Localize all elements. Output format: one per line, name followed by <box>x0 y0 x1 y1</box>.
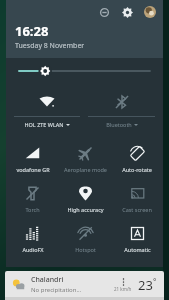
button[interactable]: vodafone GR <box>6 139 59 179</box>
button[interactable]: Bluetooth <box>88 90 155 131</box>
button[interactable]: Torch <box>6 179 59 219</box>
staticText: High accuracy <box>67 206 104 213</box>
staticText: Bluetooth <box>106 121 132 128</box>
staticText: Hotspot <box>75 246 96 253</box>
button[interactable]: Do not disturb <box>96 4 112 20</box>
staticText: 23 <box>138 276 153 294</box>
button[interactable]: Auto-rotate <box>111 139 163 179</box>
button[interactable]: Settings <box>119 4 135 20</box>
button[interactable]: Aeroplane mode <box>59 139 111 179</box>
button[interactable]: Brightness <box>19 58 150 84</box>
button[interactable]: Hotspot <box>59 219 111 259</box>
button[interactable]: Automatic <box>111 219 163 259</box>
staticText: Auto-rotate <box>122 166 152 173</box>
button[interactable]: High accuracy <box>59 179 111 219</box>
staticText: No precipitation... <box>31 286 82 294</box>
staticText: vodafone GR <box>16 166 50 173</box>
button[interactable]: Cast screen <box>111 179 163 219</box>
button[interactable]: Chalandri <box>5 271 164 297</box>
button[interactable]: AudioFX <box>6 219 59 259</box>
staticText: Automatic <box>124 246 151 253</box>
staticText: HOL ZTE WLAN <box>24 121 64 128</box>
staticText: Cast screen <box>122 206 152 213</box>
staticText: Chalandri <box>31 275 64 285</box>
staticText: ° <box>153 276 157 287</box>
staticText: AudioFX <box>22 246 44 253</box>
button[interactable]: User profile <box>142 4 158 20</box>
button[interactable]: HOL ZTE WLAN <box>14 90 80 131</box>
staticText: Torch <box>25 206 40 213</box>
staticText: Tuesday 8 November <box>15 41 85 51</box>
staticText: 21 km/h <box>114 286 132 292</box>
staticText: 16:28 <box>15 22 49 40</box>
staticText: Aeroplane mode <box>64 166 107 173</box>
